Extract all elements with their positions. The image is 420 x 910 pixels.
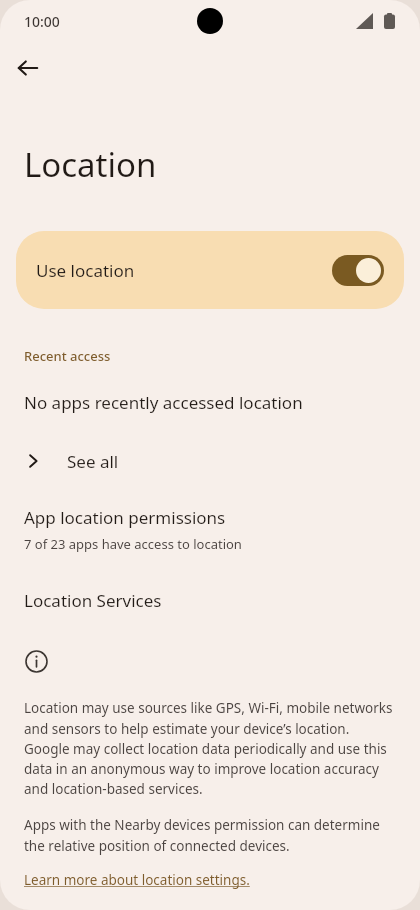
button[interactable]: See all xyxy=(0,438,420,484)
button[interactable]: Use location xyxy=(16,231,404,309)
staticText: Use location xyxy=(36,259,135,282)
button[interactable]: Back xyxy=(6,46,50,90)
staticText: Location Services xyxy=(24,589,162,612)
staticText: Recent access xyxy=(24,347,111,365)
staticText: See all xyxy=(67,450,119,473)
staticText: 10:00 xyxy=(24,12,60,31)
staticText: Apps with the Nearby devices permission … xyxy=(24,816,398,855)
staticText: App location permissions xyxy=(24,506,226,529)
staticText: No apps recently accessed location xyxy=(24,391,303,414)
staticText: Location may use sources like GPS, Wi-Fi… xyxy=(24,699,398,798)
button[interactable]: Location Services xyxy=(0,589,420,612)
staticText: Location xyxy=(24,142,157,187)
button[interactable]: Learn more about location settings. xyxy=(24,871,250,889)
staticText: Learn more about location settings. xyxy=(24,871,250,889)
staticText: 7 of 23 apps have access to location xyxy=(24,535,242,553)
button[interactable]: App location permissions xyxy=(0,506,420,553)
